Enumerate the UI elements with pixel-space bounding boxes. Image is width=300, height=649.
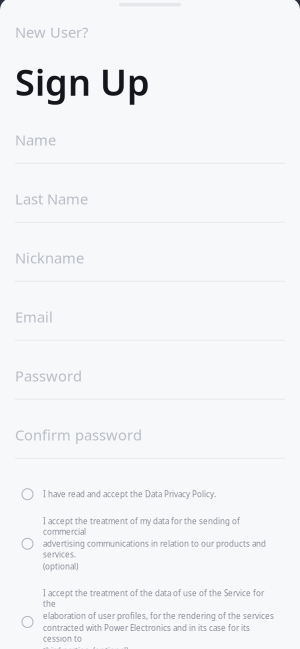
staticText: Email — [15, 307, 53, 326]
staticText: Password — [15, 366, 82, 385]
staticText: New User? — [15, 22, 88, 42]
staticText: elaboration of user profiles, for the re… — [43, 611, 274, 621]
staticText: Confirm password — [15, 425, 142, 444]
staticText: I accept the treatment of my data for th… — [43, 516, 240, 537]
staticText: Sign Up — [15, 58, 150, 106]
button[interactable]: Name — [15, 111, 285, 170]
staticText: advertising communications in relation t… — [43, 538, 266, 560]
staticText: Last Name — [15, 189, 88, 208]
staticText: I accept the treatment of the data of us… — [43, 588, 264, 609]
staticText: contracted with Power Electronics and in… — [43, 623, 250, 644]
staticText: Nickname — [15, 248, 84, 267]
button[interactable]: Last Name — [15, 170, 285, 229]
staticText: I have read and accept the Data Privacy … — [43, 489, 216, 499]
staticText: Name — [15, 130, 56, 149]
button[interactable]: I accept the treatment of my data for th… — [0, 516, 300, 572]
button[interactable]: Nickname — [15, 229, 285, 288]
button[interactable]: Confirm password — [15, 406, 285, 465]
button[interactable]: Email — [15, 288, 285, 347]
staticText: (optional) — [43, 561, 78, 572]
button[interactable]: I accept the treatment of the data of us… — [0, 588, 300, 649]
button[interactable]: Password — [15, 347, 285, 406]
button[interactable]: I have read and accept the Data Privacy … — [0, 489, 300, 500]
staticText: third parties. (optional) — [43, 645, 128, 649]
